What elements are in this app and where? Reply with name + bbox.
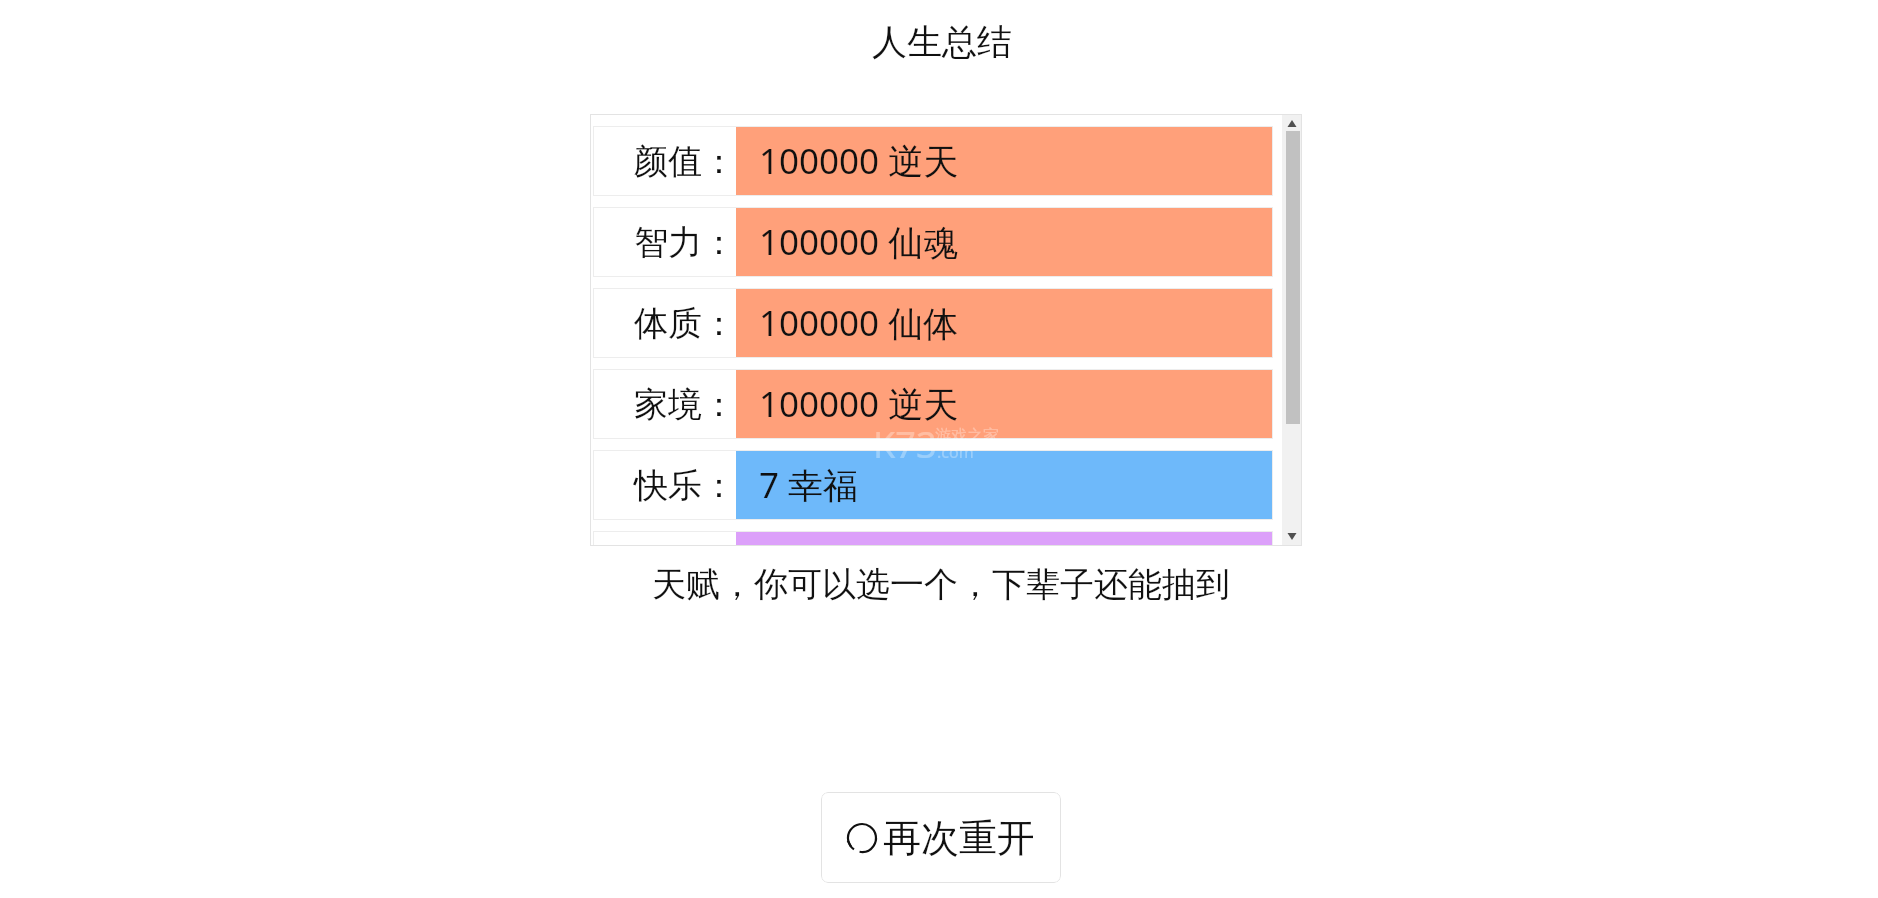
staticText: 再次重开	[883, 814, 1035, 862]
button[interactable]: 家境：	[593, 369, 1273, 439]
staticText: 人生总结	[3, 20, 1878, 64]
staticText: 100000 仙体	[759, 299, 959, 347]
staticText: 家境：	[634, 383, 736, 426]
button[interactable]: 享年：	[593, 531, 1273, 546]
button[interactable]: Scroll down	[1282, 529, 1302, 546]
staticText: 100000 仙魂	[759, 218, 959, 266]
button[interactable]: 再次重开 Restart	[821, 792, 1061, 883]
staticText: K73	[873, 420, 937, 464]
button[interactable]: 智力：	[593, 207, 1273, 277]
staticText: 体质：	[634, 302, 736, 345]
staticText: 100000 逆天	[759, 137, 959, 185]
staticText: 100000 逆天	[759, 380, 959, 428]
staticText: 7 幸福	[759, 461, 859, 509]
staticText: 天赋，你可以选一个，下辈子还能抽到	[2, 563, 1878, 606]
staticText: .com	[937, 441, 974, 463]
staticText: 颜值：	[634, 140, 736, 183]
staticText: 快乐：	[634, 464, 736, 507]
button[interactable]: 快乐：	[593, 450, 1273, 520]
button[interactable]: 颜值：	[593, 126, 1273, 196]
button[interactable]: 体质：	[593, 288, 1273, 358]
staticText: 游戏之家	[935, 426, 999, 446]
staticText: 智力：	[634, 221, 736, 264]
staticText: 3 岁	[759, 542, 824, 546]
button[interactable]: Scroll up	[1282, 114, 1302, 131]
